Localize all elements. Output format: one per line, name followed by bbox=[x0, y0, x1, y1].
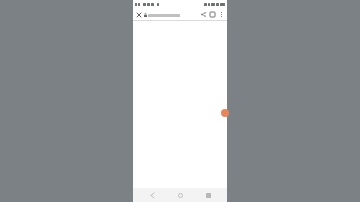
button[interactable]: Recent apps bbox=[199, 188, 217, 202]
button[interactable]: Tabs bbox=[208, 10, 217, 19]
button[interactable]: Close bbox=[135, 11, 143, 19]
button[interactable]: Home bbox=[171, 188, 189, 202]
button[interactable]: Back bbox=[143, 188, 161, 202]
button[interactable]: Share bbox=[199, 10, 208, 19]
button[interactable]: More options bbox=[217, 10, 226, 19]
button[interactable] bbox=[144, 10, 199, 20]
